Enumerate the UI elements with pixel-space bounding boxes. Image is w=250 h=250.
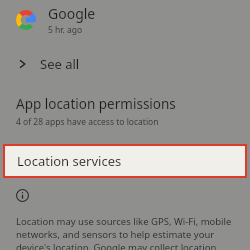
staticText: 4 of 28 apps have access to location [16,116,159,128]
other: Google [16,10,36,30]
button[interactable]: App location permissions [0,93,250,134]
staticText: App location permissions [16,95,176,113]
staticText: Location may use sources like GPS, Wi-Fi… [16,215,238,250]
button[interactable]: Location services [3,144,247,178]
button[interactable]: Expand [0,52,250,76]
staticText: Google [48,4,96,23]
staticText: See all [40,55,80,73]
staticText: 5 hr. ago [48,24,83,36]
staticText: Location services [17,152,122,170]
button[interactable]: Google [0,0,250,40]
other: Expand [17,59,27,69]
other: Information [16,189,29,202]
